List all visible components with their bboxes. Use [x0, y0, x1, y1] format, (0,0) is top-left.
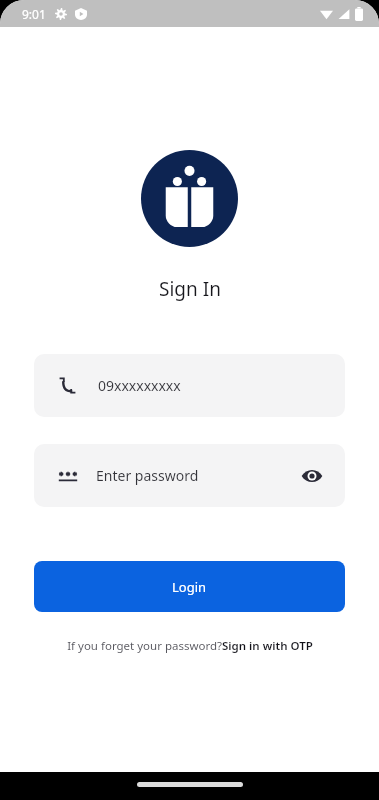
staticText: Sign In	[159, 276, 221, 302]
button[interactable]: Enter password	[34, 444, 345, 507]
button[interactable]: If you forget your password?Sign in with…	[0, 638, 379, 654]
button[interactable]: 09xxxxxxxxx	[34, 354, 345, 417]
staticText: 9:01	[22, 6, 46, 22]
button[interactable]: Login	[34, 561, 345, 612]
staticText: Login	[172, 578, 207, 596]
staticText: If you forget your password?Sign in with…	[67, 638, 313, 654]
button[interactable]: Show password	[297, 461, 327, 491]
staticText: 09xxxxxxxxx	[98, 376, 181, 395]
staticText: Enter password	[96, 466, 199, 485]
